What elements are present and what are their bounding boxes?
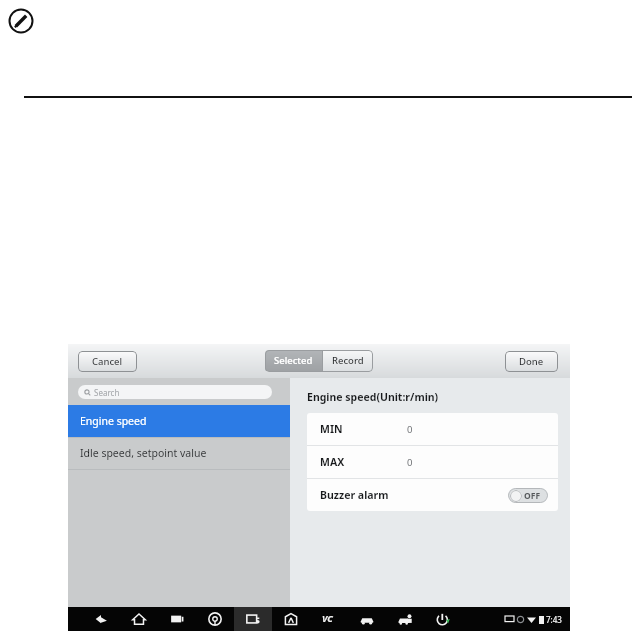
staticText: Done <box>519 355 544 368</box>
button[interactable]: Buzzer alarm toggle, off <box>508 488 548 503</box>
button[interactable]: Browser <box>196 607 234 631</box>
button[interactable]: MAX <box>307 446 558 478</box>
button[interactable]: Cancel <box>78 351 137 372</box>
button[interactable]: Search <box>78 385 272 399</box>
button[interactable]: Screenshot <box>234 607 272 631</box>
staticText: OFF <box>524 490 541 502</box>
staticText: Engine speed(Unit:r/min) <box>307 390 439 404</box>
button[interactable]: Home <box>120 607 158 631</box>
staticText: 0 <box>407 456 413 469</box>
button[interactable]: Idle speed, setpoint value <box>68 437 290 469</box>
button[interactable]: Service <box>386 607 424 631</box>
staticText: Cancel <box>92 355 123 368</box>
button[interactable]: Engine speed <box>68 405 290 437</box>
staticText: MAX <box>320 455 345 469</box>
staticText: Search <box>94 387 120 398</box>
button[interactable]: Vehicle <box>348 607 386 631</box>
staticText: Buzzer alarm <box>320 488 389 502</box>
staticText: Record <box>332 354 364 367</box>
staticText: MIN <box>320 422 343 436</box>
staticText: 0 <box>407 423 413 436</box>
button[interactable]: MIN <box>307 413 558 445</box>
button[interactable]: Buzzer alarm <box>307 479 558 511</box>
other: Edit note <box>8 8 34 34</box>
button[interactable]: Power <box>424 607 462 631</box>
staticText: Engine speed <box>80 414 147 428</box>
button[interactable]: VCI <box>310 607 348 631</box>
button[interactable]: Back <box>82 607 120 631</box>
button[interactable]: Record <box>323 350 373 371</box>
staticText: Selected <box>274 354 313 367</box>
staticText: Idle speed, setpoint value <box>80 446 207 460</box>
staticText: 7:43 <box>546 614 562 625</box>
button[interactable]: Recents <box>158 607 196 631</box>
button[interactable]: Done <box>505 351 558 372</box>
staticText: VCI <box>322 612 336 626</box>
button[interactable]: Shop <box>272 607 310 631</box>
button[interactable]: Selected <box>265 350 322 371</box>
